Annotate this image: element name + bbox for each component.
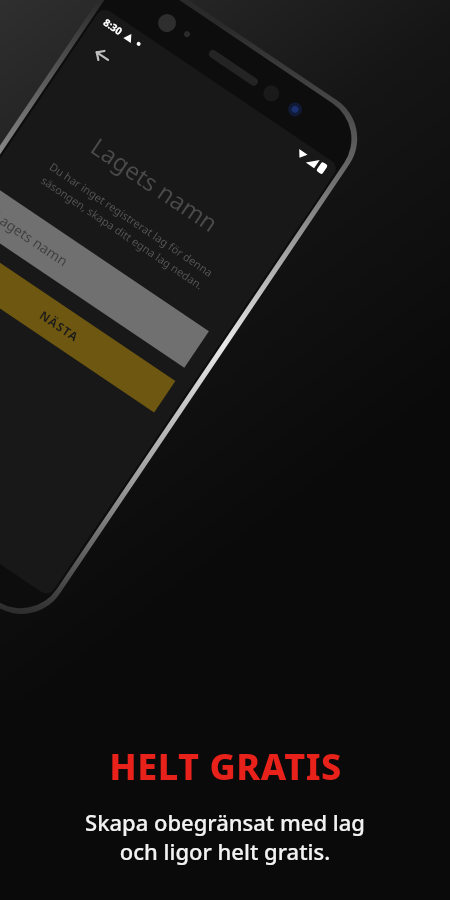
staticText: HELT GRATIS xyxy=(109,742,342,791)
button[interactable]: Back xyxy=(81,34,123,76)
staticText: 8:30 xyxy=(101,15,125,38)
button[interactable]: Lagets namn xyxy=(0,189,209,368)
staticText: Du har inget registrerat lag för denna s… xyxy=(16,144,237,307)
staticText: Skapa obegränsat med lag och ligor helt … xyxy=(85,807,365,866)
staticText: Lagets namn xyxy=(27,91,283,278)
staticText: NÄSTA xyxy=(37,307,83,345)
staticText: Lagets namn xyxy=(0,207,72,270)
button[interactable]: NÄSTA xyxy=(0,239,175,412)
